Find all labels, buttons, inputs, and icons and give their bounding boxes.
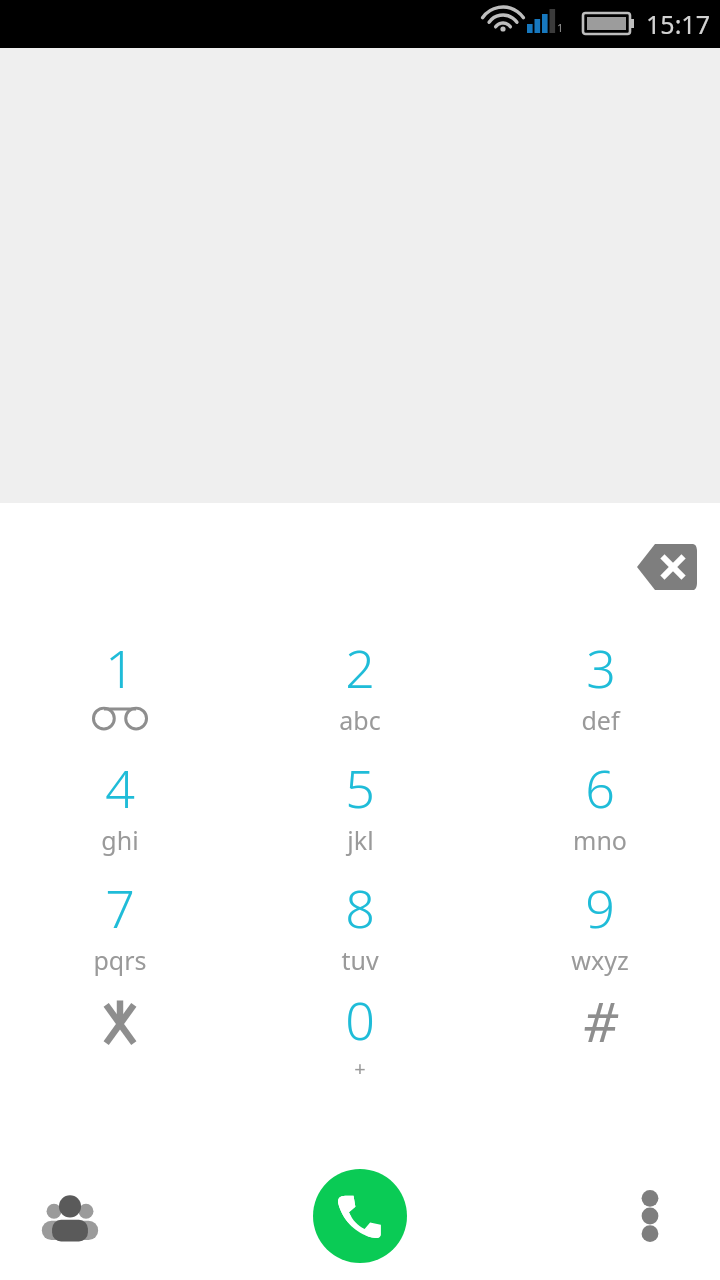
- staticText: 9: [585, 872, 615, 943]
- staticText: 8: [345, 872, 375, 943]
- staticText: 3: [586, 632, 616, 703]
- button[interactable]: 9: [500, 872, 700, 990]
- button[interactable]: Contacts: [20, 1176, 120, 1256]
- staticText: ghi: [101, 823, 139, 857]
- button[interactable]: 0: [260, 984, 460, 1102]
- staticText: 15:17: [646, 7, 710, 41]
- button[interactable]: 2: [260, 632, 460, 750]
- staticText: +: [354, 1055, 366, 1082]
- staticText: def: [581, 703, 620, 737]
- button[interactable]: 6: [500, 752, 700, 870]
- staticText: jkl: [347, 823, 374, 857]
- staticText: 2: [345, 632, 375, 703]
- button[interactable]: 7: [20, 872, 220, 990]
- button[interactable]: 8: [260, 872, 460, 990]
- button[interactable]: 4: [20, 752, 220, 870]
- button[interactable]: #: [500, 984, 700, 1102]
- button[interactable]: 5: [260, 752, 460, 870]
- staticText: #: [583, 984, 618, 1058]
- button[interactable]: 3: [500, 632, 700, 750]
- button[interactable]: 1: [20, 632, 220, 750]
- button[interactable]: More options: [610, 1176, 690, 1256]
- button[interactable]: Call: [313, 1169, 407, 1263]
- button[interactable]: Backspace: [628, 536, 706, 598]
- staticText: abc: [339, 703, 381, 737]
- staticText: 4: [105, 752, 135, 823]
- staticText: 1: [557, 21, 563, 35]
- staticText: 6: [585, 752, 615, 823]
- staticText: pqrs: [93, 943, 147, 977]
- staticText: 7: [105, 872, 135, 943]
- staticText: tuv: [341, 943, 379, 977]
- staticText: wxyz: [571, 943, 629, 977]
- staticText: 0: [345, 984, 375, 1055]
- button[interactable]: Star: [20, 984, 220, 1102]
- staticText: 1: [105, 632, 135, 703]
- staticText: 5: [345, 752, 375, 823]
- staticText: mno: [573, 823, 627, 857]
